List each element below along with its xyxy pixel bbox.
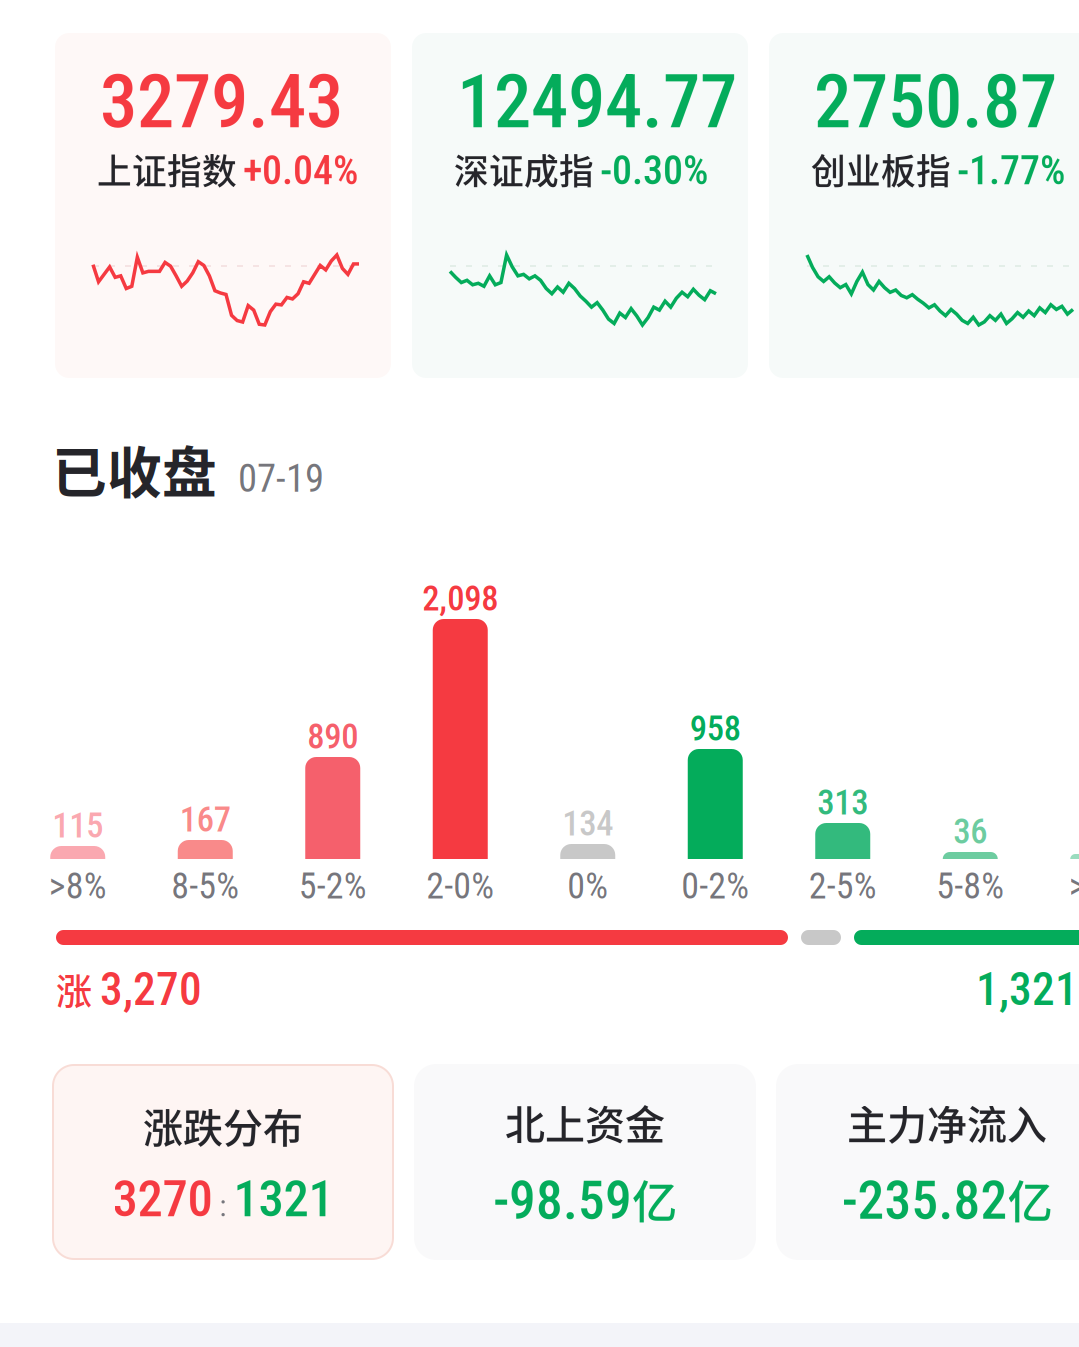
staticText: -1.77% (957, 147, 1065, 194)
staticText: 0-2% (681, 865, 749, 907)
button[interactable]: 涨跌分布 (53, 1065, 393, 1259)
staticText: 北上资金 (505, 1093, 665, 1151)
staticText: 07-19 (238, 456, 324, 501)
staticText: 958 (690, 708, 741, 749)
staticText: 890 (307, 716, 358, 757)
staticText: 已收盘 (52, 429, 217, 508)
staticText: 上证指数 (97, 144, 237, 194)
staticText: +0.04% (243, 147, 358, 194)
staticText: 2-5% (809, 865, 877, 907)
button[interactable]: 3279.43 (55, 33, 391, 378)
staticText: 2,098 (422, 578, 498, 619)
staticText: 1,321 (976, 963, 1078, 1016)
staticText: 亿 (632, 1166, 677, 1232)
staticText: 主力净流入 (847, 1093, 1047, 1151)
staticText: 0% (567, 865, 608, 907)
staticText: 涨跌分布 (143, 1096, 303, 1154)
staticText: 134 (562, 803, 613, 844)
staticText: >8% (1069, 865, 1079, 907)
staticText: : (219, 1189, 226, 1223)
staticText: 2-0% (426, 865, 494, 907)
staticText: 8-5% (171, 865, 239, 907)
staticText: 167 (180, 799, 231, 840)
staticText: 5-8% (936, 865, 1004, 907)
button[interactable]: 12494.77 (412, 33, 748, 378)
staticText: 115 (52, 805, 103, 846)
staticText: -98.59 (493, 1169, 632, 1232)
staticText: 36 (953, 811, 987, 852)
staticText: 涨 (56, 963, 92, 1015)
staticText: 深证成指 (454, 144, 594, 194)
button[interactable]: 北上资金 (415, 1065, 755, 1259)
staticText: 3270 (112, 1169, 212, 1229)
button[interactable]: 主力净流入 (777, 1065, 1079, 1259)
button[interactable]: 2750.87 (769, 33, 1079, 378)
staticText: >8% (49, 865, 107, 907)
staticText: 3279.43 (100, 58, 343, 145)
staticText: 5-2% (299, 865, 367, 907)
staticText: -0.30% (600, 147, 708, 194)
staticText: 亿 (1007, 1166, 1052, 1232)
staticText: 1321 (233, 1169, 333, 1229)
staticText: -235.82 (841, 1169, 1007, 1232)
staticText: 创业板指 (811, 144, 951, 194)
staticText: 12494.77 (457, 58, 737, 145)
staticText: 3,270 (100, 963, 202, 1016)
staticText: 2750.87 (814, 58, 1057, 145)
staticText: 313 (817, 782, 868, 823)
